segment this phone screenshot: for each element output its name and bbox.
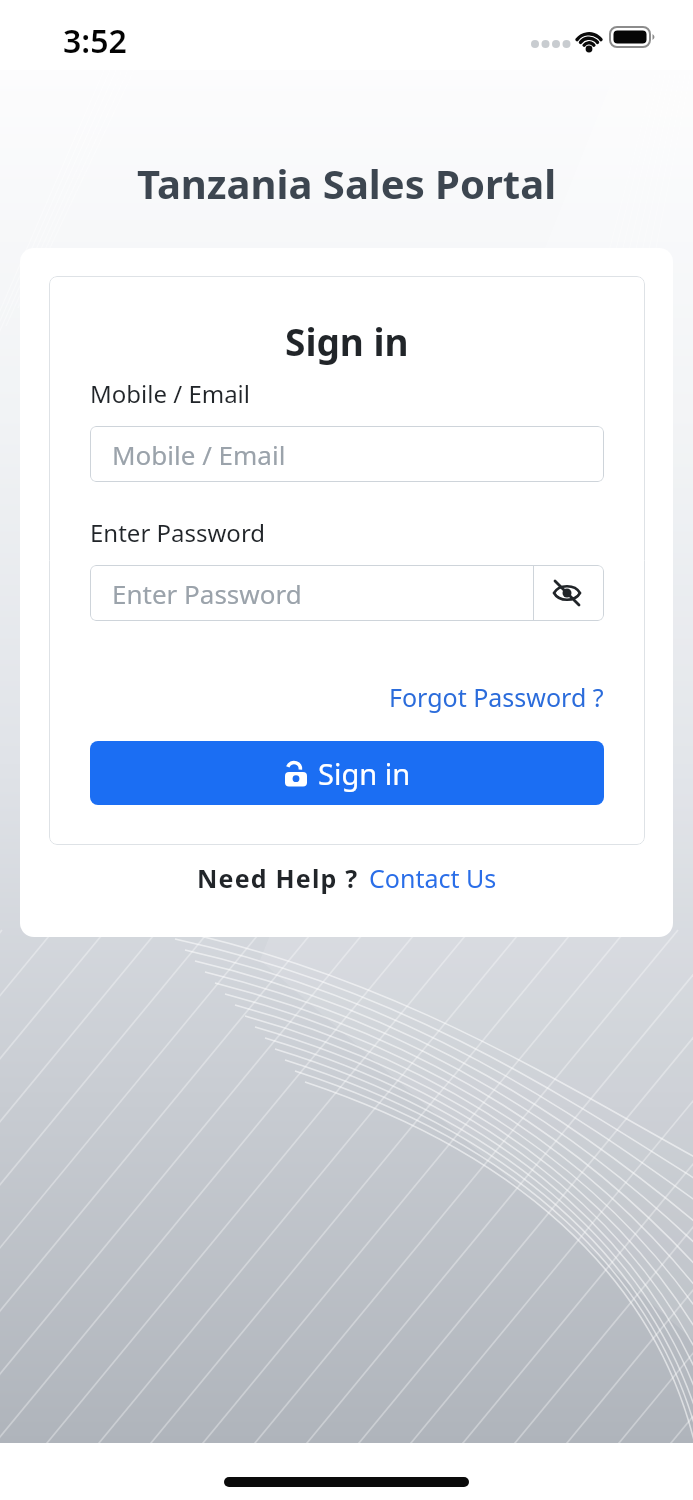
staticText: Sign in (318, 754, 411, 793)
staticText: Enter Password (112, 576, 302, 611)
staticText: Mobile / Email (90, 377, 251, 410)
staticText: Tanzania Sales Portal (137, 156, 557, 210)
button[interactable]: Contact Us (369, 861, 497, 895)
staticText: Enter Password (90, 516, 266, 549)
staticText: Sign in (285, 316, 409, 366)
button[interactable] (552, 578, 582, 608)
button[interactable]: Sign in (90, 741, 604, 805)
staticText: 3:52 (63, 19, 127, 63)
button[interactable]: Forgot Password ? (389, 680, 604, 714)
button[interactable]: Mobile / Email (90, 426, 604, 482)
staticText: Mobile / Email (112, 437, 286, 472)
staticText: Need Help ? (197, 861, 359, 895)
button[interactable]: Enter Password (90, 565, 604, 621)
